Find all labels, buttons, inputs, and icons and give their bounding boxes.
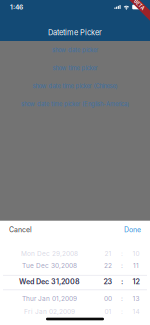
staticText: 01 <box>104 308 111 316</box>
staticText: 14 <box>132 308 139 316</box>
staticText: 10 <box>132 250 139 258</box>
staticText: show time picker <box>52 64 97 72</box>
staticText: Datetime Picker <box>48 28 102 37</box>
button[interactable]: Done <box>115 221 150 238</box>
staticText: : <box>121 277 123 286</box>
staticText: : <box>121 250 123 258</box>
staticText: show date time picker (Chinese) <box>32 82 117 90</box>
staticText: 00 <box>104 295 112 303</box>
staticText: 21 <box>104 250 111 258</box>
staticText: Fri Jan 02,2009 <box>24 308 75 316</box>
staticText: Done <box>124 225 141 234</box>
staticText: 12 <box>132 277 139 286</box>
staticText: Thur Jan 01,2009 <box>22 295 77 303</box>
staticText: 11 <box>133 262 139 270</box>
staticText: Tue Dec 30,2008 <box>22 262 77 270</box>
staticText: 1:46 <box>10 3 23 11</box>
staticText: 23 <box>103 277 112 286</box>
staticText: Cancel <box>9 225 32 234</box>
staticText: : <box>121 262 123 270</box>
button[interactable]: show time picker <box>0 59 150 77</box>
staticText: 22 <box>104 262 112 270</box>
button[interactable]: show date time picker (Chinese) <box>0 77 150 95</box>
staticText: Wed Dec 31,2008 <box>19 277 80 286</box>
staticText: : <box>121 308 123 316</box>
button[interactable]: show date picker <box>0 41 150 59</box>
staticText: : <box>121 295 123 303</box>
button[interactable]: show date time picker (English-America) <box>0 95 150 113</box>
staticText: show date picker <box>52 46 98 54</box>
staticText: 13 <box>132 295 139 303</box>
staticText: BETA <box>133 2 145 7</box>
staticText: show date time picker (English-America) <box>21 100 129 108</box>
staticText: Mon Dec 29,2008 <box>21 250 78 258</box>
button[interactable]: Cancel <box>0 221 41 238</box>
